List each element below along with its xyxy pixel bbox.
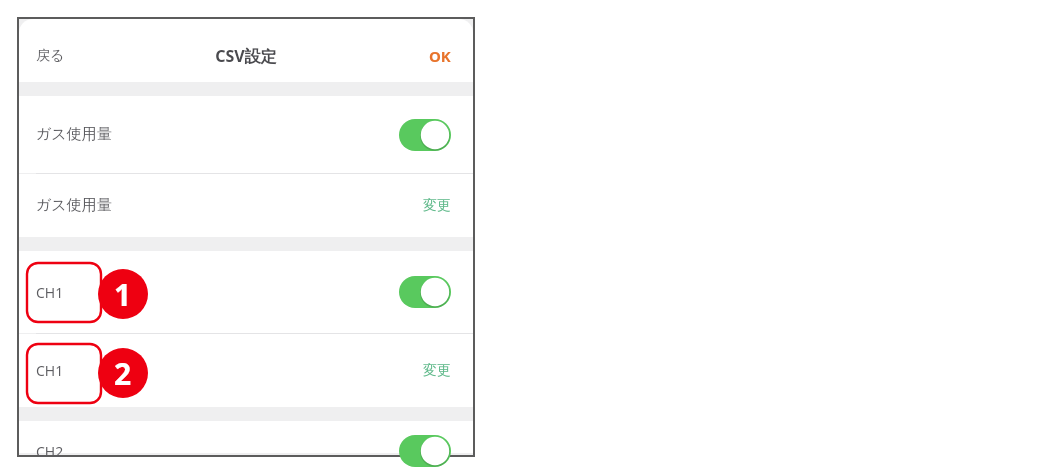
button[interactable]: 変更 [423,197,451,215]
staticText: ガス使用量 [36,125,112,144]
staticText: ガス使用量 [36,196,112,215]
button[interactable]: Toggle [399,119,451,151]
button[interactable]: ガス使用量 [19,174,473,237]
staticText: 2 [114,353,132,394]
button[interactable]: OK [429,46,451,66]
button[interactable]: Toggle [399,276,451,308]
staticText: CH1 [36,283,64,302]
button[interactable]: CH1 [19,251,473,333]
button[interactable]: ガス使用量 [19,96,473,173]
staticText: CH2 [36,442,64,461]
staticText: 1 [114,274,132,315]
button[interactable]: 変更 [423,362,451,380]
button[interactable]: 戻る [36,47,65,65]
staticText: CH1 [36,361,64,380]
button[interactable]: Toggle [399,435,451,467]
button[interactable]: CH2 [19,421,473,453]
staticText: CSV設定 [215,45,277,67]
button[interactable]: CH1 [19,334,473,407]
